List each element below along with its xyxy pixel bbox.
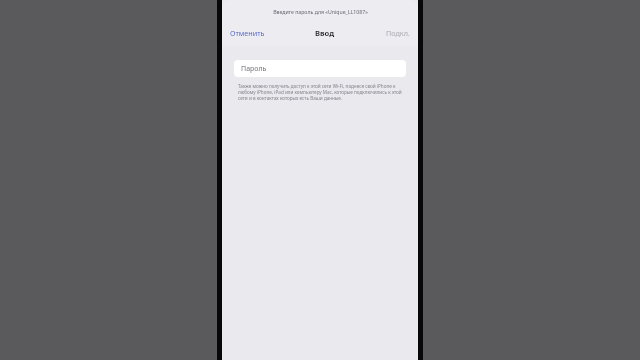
staticText: Подкл.	[386, 28, 410, 38]
staticText: Введите пароль для «Unique_LL1087»	[273, 8, 368, 15]
staticText: Пароль	[241, 64, 267, 74]
staticText: Ввод	[315, 28, 335, 38]
button[interactable]: Пароль	[234, 60, 406, 77]
button[interactable]: Подкл.	[384, 24, 412, 42]
staticText: Также можно получить доступ к этой сети …	[238, 83, 404, 101]
staticText: Отменить	[230, 28, 265, 38]
button[interactable]: Отменить	[228, 24, 267, 42]
